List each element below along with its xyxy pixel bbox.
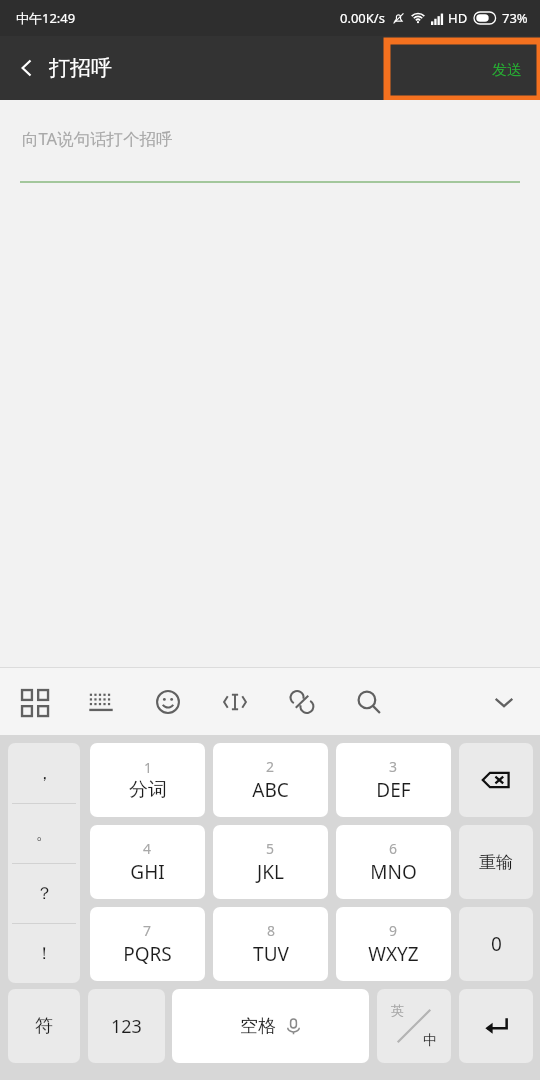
staticText: ？ — [36, 883, 53, 904]
button[interactable]: Emoji — [134, 668, 201, 735]
button[interactable]: Search — [335, 668, 402, 735]
staticText: 123 — [111, 1014, 142, 1039]
other: Back — [16, 57, 38, 79]
button[interactable]: Text edit — [201, 668, 268, 735]
staticText: 发送 — [492, 61, 522, 80]
staticText: 9 — [389, 921, 398, 940]
staticText: 中 — [423, 1032, 437, 1050]
button[interactable]: Enter — [459, 989, 533, 1063]
staticText: 分词 — [129, 778, 167, 802]
staticText: 8 — [267, 921, 276, 940]
staticText: 空格 — [240, 1015, 276, 1038]
staticText: JKL — [257, 859, 284, 885]
button[interactable]: ， — [8, 743, 80, 803]
button[interactable]: 0 — [459, 907, 533, 981]
staticText: 重输 — [479, 852, 513, 873]
button[interactable]: Apps — [0, 668, 67, 735]
staticText: ABC — [252, 777, 289, 803]
button[interactable]: Hide keyboard — [468, 668, 540, 735]
staticText: 打招呼 — [49, 55, 112, 81]
staticText: 符 — [35, 1015, 53, 1038]
staticText: MNO — [370, 859, 417, 885]
staticText: ！ — [36, 943, 53, 964]
staticText: 1 — [144, 758, 153, 777]
button[interactable]: 发送 — [474, 49, 540, 92]
button[interactable]: 重输 — [459, 825, 533, 899]
staticText: HD — [448, 9, 468, 27]
button[interactable]: 。 — [8, 804, 80, 863]
staticText: 向TA说句话打个招呼 — [22, 127, 173, 150]
button[interactable]: Keyboard — [67, 668, 134, 735]
button[interactable]: 8 — [213, 907, 328, 981]
button[interactable]: 空格 — [172, 989, 369, 1063]
button[interactable]: Back — [0, 47, 124, 89]
staticText: ， — [36, 763, 53, 784]
staticText: 英 — [391, 1002, 404, 1018]
staticText: WXYZ — [368, 941, 419, 967]
button[interactable]: 6 — [336, 825, 451, 899]
button[interactable]: Clipboard — [268, 668, 335, 735]
button[interactable]: 9 — [336, 907, 451, 981]
button[interactable]: 1 — [90, 743, 205, 817]
staticText: 0.00K/s — [340, 9, 385, 27]
staticText: 0 — [491, 931, 502, 957]
button[interactable]: Backspace — [459, 743, 533, 817]
staticText: 中午12:49 — [16, 9, 76, 27]
button[interactable]: 3 — [336, 743, 451, 817]
staticText: 4 — [143, 839, 152, 858]
staticText: 5 — [266, 839, 275, 858]
button[interactable]: ？ — [8, 864, 80, 923]
staticText: DEF — [376, 777, 411, 803]
button[interactable]: 5 — [213, 825, 328, 899]
staticText: 73% — [502, 9, 528, 27]
button[interactable]: 4 — [90, 825, 205, 899]
button[interactable]: 123 — [88, 989, 165, 1063]
staticText: 7 — [143, 921, 152, 940]
button[interactable]: 2 — [213, 743, 328, 817]
staticText: 2 — [266, 757, 275, 776]
staticText: PQRS — [123, 941, 172, 967]
button[interactable]: 符 — [8, 989, 80, 1063]
button[interactable]: Switch English Chinese — [377, 989, 451, 1063]
staticText: 6 — [389, 839, 398, 858]
staticText: 3 — [389, 757, 398, 776]
button[interactable]: ！ — [8, 924, 80, 983]
button[interactable]: 7 — [90, 907, 205, 981]
staticText: 。 — [36, 823, 53, 844]
staticText: GHI — [130, 859, 165, 885]
staticText: TUV — [253, 941, 289, 967]
